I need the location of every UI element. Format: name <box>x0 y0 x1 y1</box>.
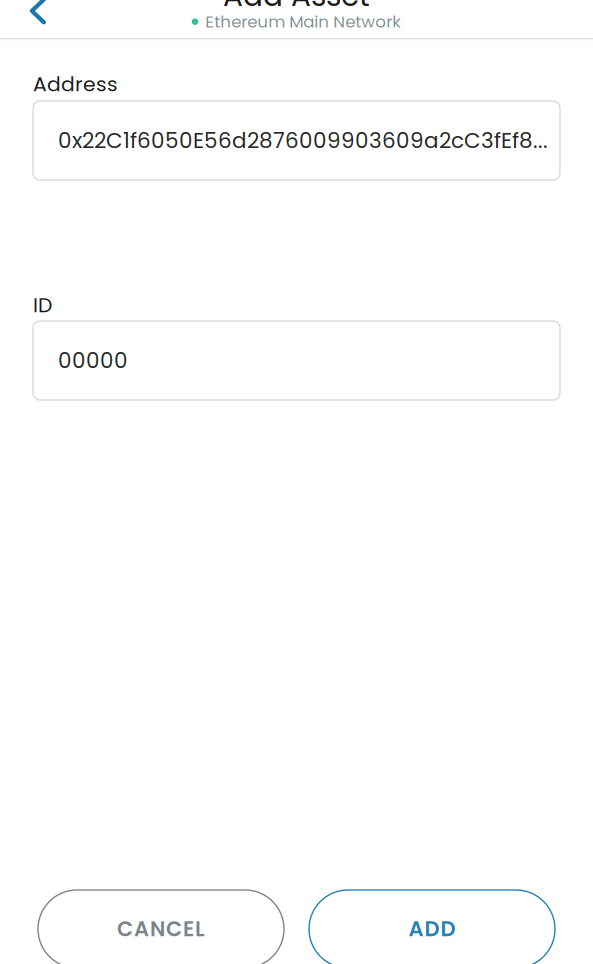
staticText: 0x22C1f6050E56d2876009903609a2cC3fEf8... <box>58 125 548 155</box>
button[interactable]: Back <box>2 0 74 29</box>
staticText: Ethereum Main Network <box>205 10 401 33</box>
staticText: ADD <box>408 914 455 944</box>
staticText: Address <box>33 70 118 98</box>
staticText: Add Asset <box>223 0 370 16</box>
staticText: CANCEL <box>117 914 205 944</box>
button[interactable]: ADD <box>309 890 555 964</box>
button[interactable]: CANCEL <box>38 890 284 964</box>
staticText: 00000 <box>58 345 128 375</box>
staticText: ID <box>33 291 52 319</box>
